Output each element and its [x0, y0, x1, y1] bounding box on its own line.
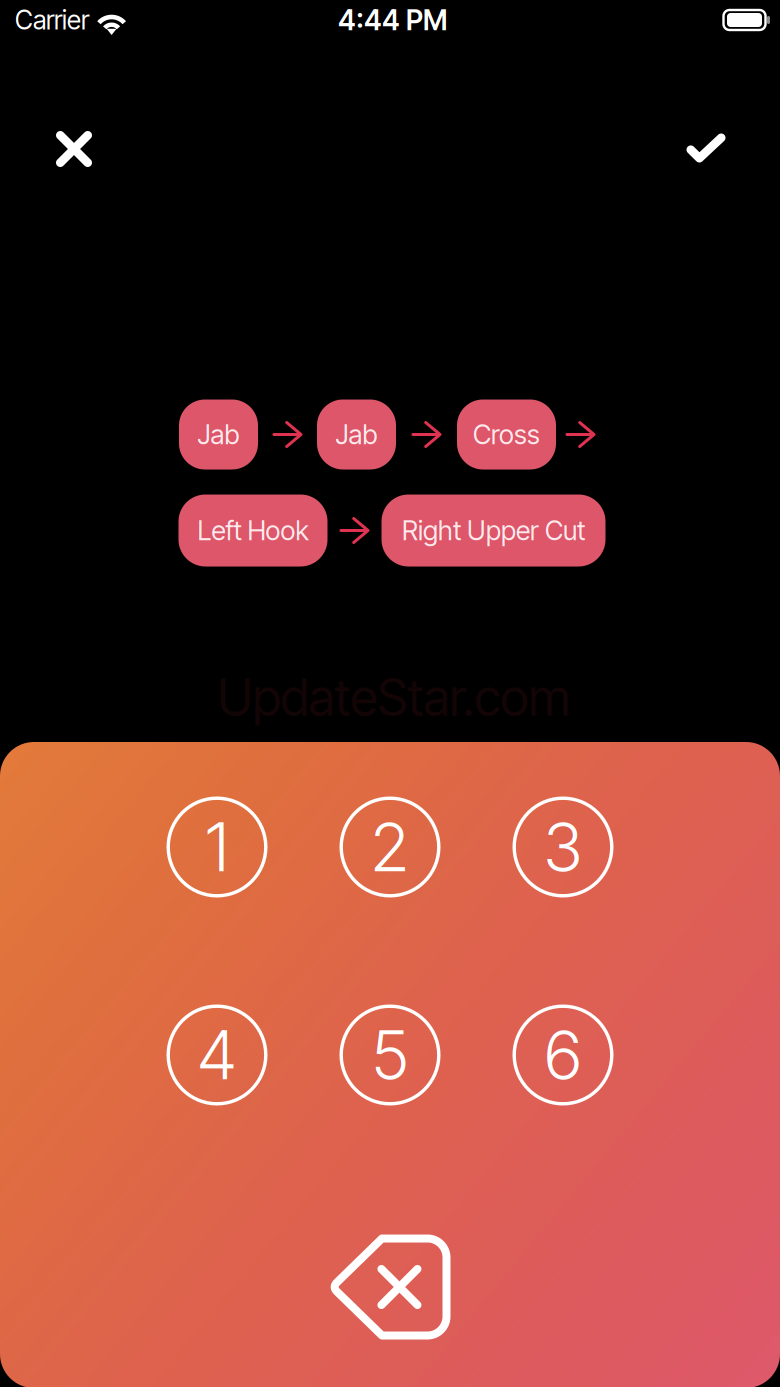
staticText: UpdateStar.com — [217, 666, 570, 728]
button[interactable]: Right Upper Cut — [381, 494, 605, 566]
button[interactable]: Delete — [329, 1234, 450, 1339]
button[interactable]: Jab — [179, 399, 258, 469]
staticText: 4 — [197, 1015, 237, 1095]
button[interactable]: 5 — [339, 1004, 440, 1105]
staticText: 4:44 PM — [338, 3, 447, 37]
button[interactable]: 4 — [166, 1004, 267, 1105]
staticText: 3 — [543, 807, 583, 887]
button[interactable]: Cross — [457, 399, 556, 469]
staticText: 2 — [370, 807, 409, 887]
button[interactable]: Save — [669, 111, 743, 185]
staticText: Left Hook — [197, 514, 308, 547]
button[interactable]: 2 — [339, 796, 440, 897]
staticText: 5 — [371, 1015, 408, 1095]
staticText: Jab — [197, 418, 239, 451]
button[interactable]: 1 — [166, 796, 267, 897]
button[interactable]: Jab — [317, 399, 396, 469]
staticText: 6 — [544, 1015, 582, 1095]
staticText: Jab — [335, 418, 377, 451]
button[interactable]: 3 — [512, 796, 613, 897]
staticText: 1 — [205, 807, 229, 887]
staticText: Right Upper Cut — [402, 514, 585, 547]
button[interactable]: Cancel — [37, 112, 111, 186]
staticText: Cross — [473, 418, 540, 451]
button[interactable]: 6 — [512, 1004, 613, 1105]
staticText: Carrier — [15, 4, 89, 36]
button[interactable]: Left Hook — [178, 494, 327, 566]
